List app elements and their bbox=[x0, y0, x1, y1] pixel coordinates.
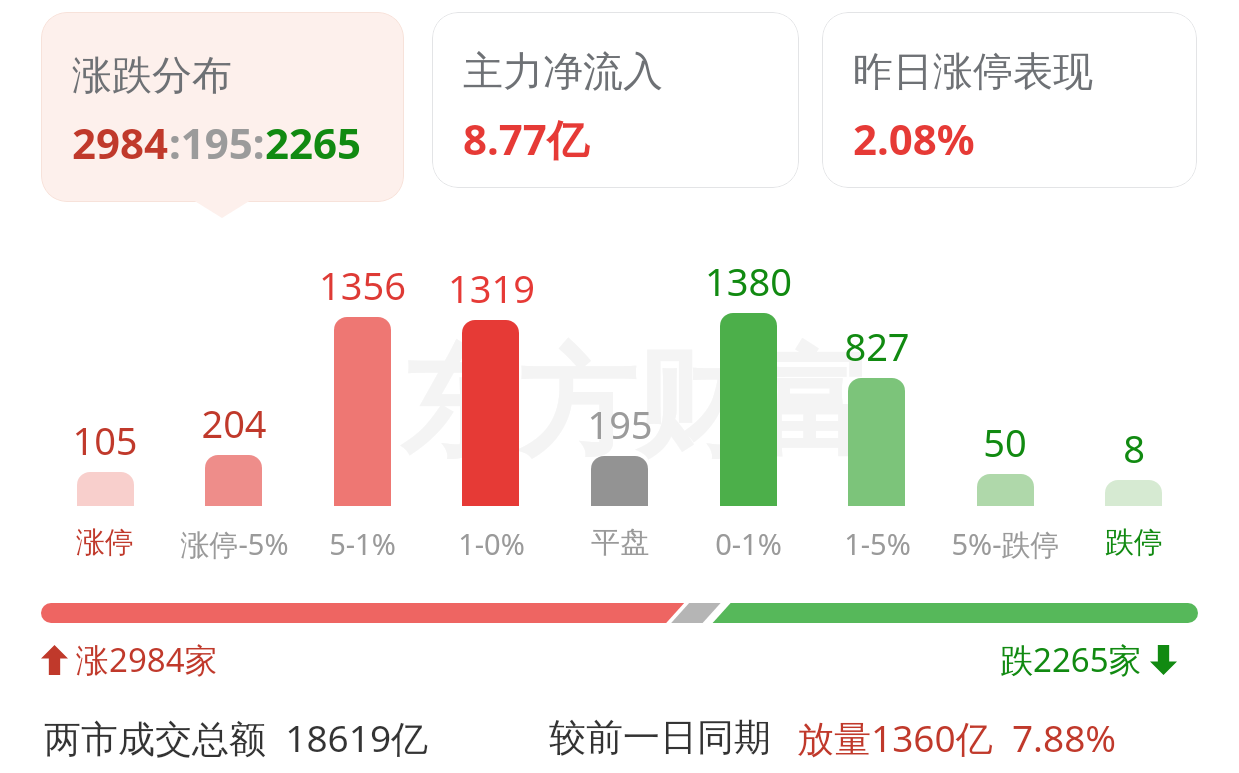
staticText: 平盘 bbox=[591, 524, 649, 561]
staticText: 8.77亿 bbox=[463, 110, 589, 167]
button[interactable]: 涨跌分布 bbox=[41, 12, 404, 202]
staticText: 东方财富 bbox=[400, 330, 872, 479]
staticText: 5%-跌停 bbox=[951, 524, 1060, 564]
button[interactable]: 上涨 bbox=[41, 637, 218, 682]
staticText: 跌2265家 bbox=[1000, 637, 1142, 682]
staticText: 主力净流入 bbox=[463, 46, 663, 96]
staticText: 涨2984家 bbox=[76, 637, 218, 682]
staticText: 涨跌分布 bbox=[72, 50, 232, 100]
staticText: 昨日涨停表现 bbox=[853, 46, 1093, 96]
staticText: 较前一日同期 bbox=[549, 714, 771, 761]
staticText: 1356 bbox=[319, 259, 406, 311]
staticText: 1380 bbox=[705, 255, 792, 307]
staticText: 8 bbox=[1123, 422, 1145, 474]
button[interactable]: 主力净流入 bbox=[432, 12, 799, 188]
staticText: 跌停 bbox=[1105, 524, 1163, 561]
staticText: 涨停-5% bbox=[180, 524, 289, 564]
staticText: 2984 bbox=[72, 114, 169, 171]
staticText: 两市成交总额 18619亿 bbox=[44, 712, 429, 763]
staticText: 50 bbox=[983, 416, 1027, 468]
staticText: :195: bbox=[169, 114, 265, 171]
staticText: 放量1360亿 7.88% bbox=[797, 712, 1117, 763]
other: 下跌 bbox=[1150, 645, 1177, 675]
staticText: 涨停 bbox=[76, 524, 134, 561]
button[interactable]: 跌2265家 bbox=[1000, 637, 1177, 682]
staticText: 827 bbox=[844, 320, 910, 372]
button[interactable]: 昨日涨停表现 bbox=[822, 12, 1197, 188]
staticText: 0-1% bbox=[715, 524, 782, 563]
staticText: 2.08% bbox=[853, 110, 975, 167]
staticText: 2265 bbox=[265, 114, 362, 171]
staticText: 1-0% bbox=[458, 524, 525, 563]
staticText: 105 bbox=[72, 414, 138, 466]
staticText: 1319 bbox=[448, 262, 535, 314]
staticText: 204 bbox=[201, 397, 267, 449]
staticText: 5-1% bbox=[329, 524, 396, 563]
staticText: 1-5% bbox=[844, 524, 911, 563]
staticText: 195 bbox=[587, 398, 653, 450]
other: 上涨 bbox=[41, 645, 68, 675]
